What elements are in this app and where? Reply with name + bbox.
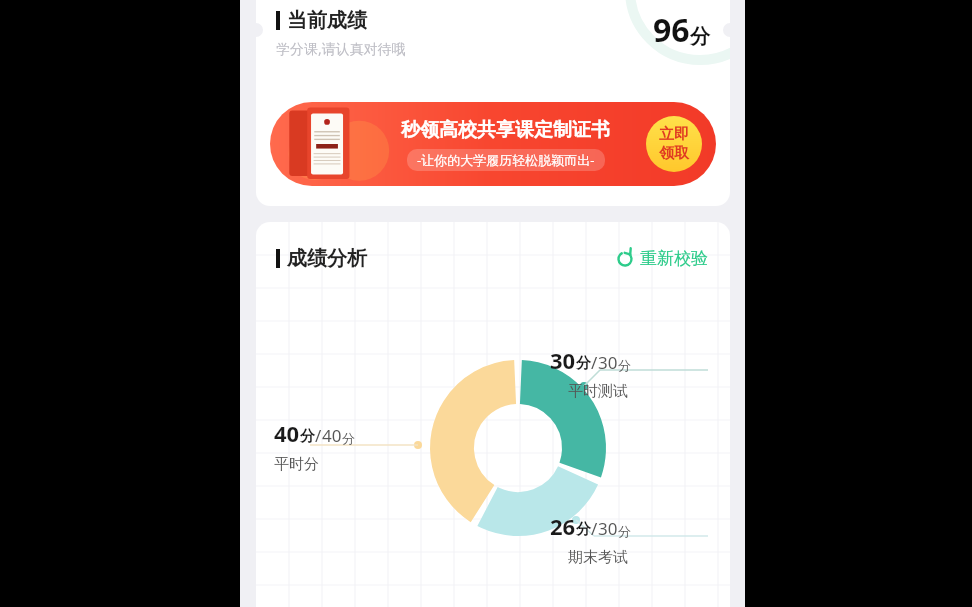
staticText: 26 — [550, 511, 576, 541]
staticText: 成绩分析 — [287, 246, 367, 271]
other: 重新校验 — [616, 250, 634, 268]
staticText: 平时分 — [274, 455, 319, 474]
staticText: 分 — [618, 357, 631, 373]
staticText: 当前成绩 — [287, 8, 367, 33]
staticText: 30 — [598, 517, 618, 540]
staticText: 期末考试 — [568, 548, 628, 567]
staticText: 学分课,请认真对待哦 — [276, 39, 406, 58]
staticText: 分 — [576, 520, 591, 539]
staticText: 领取 — [659, 144, 689, 163]
staticText: 分 — [300, 427, 315, 446]
staticText: 立即 — [659, 125, 689, 144]
staticText: -让你的大学履历轻松脱颖而出- — [417, 151, 595, 169]
staticText: 分 — [576, 354, 591, 373]
button[interactable]: 重新校验 — [614, 246, 710, 271]
staticText: 重新校验 — [640, 248, 708, 269]
staticText: 30 — [550, 345, 576, 375]
staticText: 分 — [342, 430, 355, 446]
staticText: 96 — [653, 8, 690, 52]
button[interactable]: 秒领高校共享课定制证书 — [270, 102, 716, 186]
button[interactable]: 立即 — [646, 116, 702, 172]
staticText: 秒领高校共享课定制证书 — [401, 118, 610, 142]
staticText: 分 — [690, 24, 710, 49]
staticText: / — [591, 351, 598, 374]
staticText: 30 — [598, 351, 618, 374]
staticText: 分 — [618, 523, 631, 539]
staticText: / — [315, 424, 322, 447]
staticText: 40 — [274, 418, 300, 448]
staticText: / — [591, 517, 598, 540]
staticText: 平时测试 — [568, 382, 628, 401]
staticText: 40 — [322, 424, 342, 447]
